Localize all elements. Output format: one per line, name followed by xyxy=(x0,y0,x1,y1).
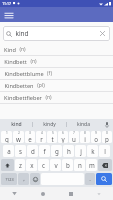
staticText: (n) xyxy=(19,46,26,53)
staticText: o xyxy=(94,135,98,143)
button[interactable]: s xyxy=(15,145,26,157)
button[interactable]: Clear search query xyxy=(98,29,107,38)
staticText: 9 xyxy=(95,131,97,135)
staticText: m xyxy=(89,161,95,169)
button[interactable]: z xyxy=(15,159,25,171)
button[interactable]: Kindbettfieber xyxy=(0,92,113,103)
button[interactable]: m xyxy=(86,159,97,171)
staticText: (n) xyxy=(45,94,52,101)
button[interactable]: Search xyxy=(96,173,112,185)
button[interactable]: f xyxy=(39,145,50,157)
button[interactable]: 6 xyxy=(58,131,68,143)
staticText: c xyxy=(42,161,45,169)
staticText: e xyxy=(28,135,32,143)
staticText: i xyxy=(84,135,86,143)
button[interactable]: Kindbetten xyxy=(0,80,113,91)
staticText: kind xyxy=(15,29,29,38)
staticText: v xyxy=(54,161,58,169)
button[interactable]: d xyxy=(27,145,38,157)
button[interactable]: Kindbettblume xyxy=(0,68,113,79)
staticText: h xyxy=(67,147,71,155)
staticText: Kind xyxy=(4,46,16,54)
staticText: (pl) xyxy=(37,82,45,89)
button[interactable]: ?123 xyxy=(1,173,17,185)
staticText: x xyxy=(30,161,34,169)
staticText: b xyxy=(66,161,70,169)
staticText: 0 xyxy=(106,131,108,135)
staticText: u xyxy=(72,135,76,143)
button[interactable]: Voice input xyxy=(100,119,113,130)
button[interactable]: x xyxy=(26,159,37,171)
staticText: y xyxy=(61,135,65,143)
button[interactable]: Open navigation menu xyxy=(3,9,15,21)
staticText: j xyxy=(80,147,82,155)
button[interactable]: 1 xyxy=(1,131,12,143)
button[interactable]: g xyxy=(51,145,62,157)
staticText: kindy xyxy=(43,121,56,128)
staticText: 7 xyxy=(73,131,75,135)
button[interactable]: Emoji xyxy=(30,173,40,185)
staticText: q xyxy=(5,135,9,143)
button[interactable]: kinda xyxy=(67,119,100,130)
staticText: d xyxy=(31,147,35,155)
button[interactable]: h xyxy=(63,145,74,157)
staticText: k xyxy=(91,147,95,155)
staticText: 3 xyxy=(29,131,31,135)
button[interactable]: j xyxy=(75,145,86,157)
staticText: a xyxy=(7,147,11,155)
staticText: . xyxy=(89,175,91,183)
staticText: (n) xyxy=(30,58,37,65)
staticText: kinda xyxy=(77,121,90,128)
button[interactable]: , xyxy=(18,173,29,185)
button[interactable]: Kindbett xyxy=(0,56,113,67)
button[interactable]: 8 xyxy=(80,131,90,143)
button[interactable]: a xyxy=(3,145,14,157)
button[interactable]: Kind xyxy=(0,44,113,55)
staticText: 8 xyxy=(84,131,86,135)
button[interactable]: . xyxy=(85,173,95,185)
staticText: ?123 xyxy=(5,177,14,182)
staticText: 4 xyxy=(41,131,43,135)
button[interactable]: Home xyxy=(29,187,57,200)
staticText: t xyxy=(51,135,54,143)
button[interactable]: kindy xyxy=(33,119,66,130)
staticText: 5 xyxy=(52,131,54,135)
staticText: 2 xyxy=(18,131,20,135)
button[interactable]: Hide keyboard xyxy=(85,187,113,200)
button[interactable]: kind xyxy=(3,26,110,41)
staticText: 1 xyxy=(6,131,8,135)
button[interactable]: b xyxy=(62,159,73,171)
button[interactable]: k xyxy=(87,145,98,157)
staticText: Kindbettblume xyxy=(4,70,44,78)
button[interactable]: Shift xyxy=(1,159,14,171)
button[interactable]: n xyxy=(74,159,85,171)
staticText: kind xyxy=(11,121,22,128)
staticText: , xyxy=(23,175,25,183)
staticText: 6 xyxy=(62,131,64,135)
staticText: n xyxy=(78,161,82,169)
button[interactable]: v xyxy=(50,159,61,171)
button[interactable]: Delete xyxy=(98,159,112,171)
staticText: 11:17 xyxy=(2,1,11,6)
button[interactable]: 4 xyxy=(36,131,46,143)
button[interactable]: 0 xyxy=(102,131,112,143)
button[interactable]: 7 xyxy=(69,131,79,143)
button[interactable]: 2 xyxy=(13,131,24,143)
button[interactable]: l xyxy=(99,145,110,157)
staticText: Kindbettfieber xyxy=(4,94,42,102)
button[interactable]: 3 xyxy=(25,131,35,143)
staticText: p xyxy=(105,135,109,143)
staticText: r xyxy=(40,135,43,143)
button[interactable]: Recent apps xyxy=(57,187,85,200)
staticText: f xyxy=(43,147,46,155)
button[interactable]: 5 xyxy=(47,131,57,143)
staticText: Kindbetten xyxy=(4,82,34,90)
button[interactable]: c xyxy=(38,159,49,171)
staticText: z xyxy=(19,161,22,169)
staticText: g xyxy=(55,147,59,155)
button[interactable]: kind xyxy=(0,119,32,130)
button[interactable]: 9 xyxy=(91,131,101,143)
button[interactable]: Back xyxy=(0,187,29,200)
staticText: s xyxy=(19,147,22,155)
